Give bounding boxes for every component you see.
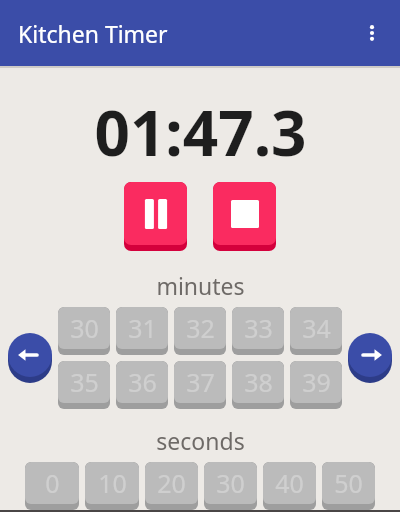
button[interactable]: Next (348, 333, 392, 383)
button[interactable]: 35 (58, 361, 110, 409)
staticText: 34 (302, 311, 331, 345)
button[interactable]: Pause (124, 182, 187, 251)
staticText: 30 (216, 466, 245, 500)
button[interactable]: 50 (322, 462, 375, 510)
staticText: 38 (244, 365, 273, 399)
button[interactable]: Stop (213, 182, 276, 251)
staticText: 10 (98, 466, 127, 500)
staticText: Kitchen Timer (18, 18, 168, 49)
staticText: 36 (128, 365, 157, 399)
button[interactable]: More options (352, 13, 392, 53)
staticText: 33 (244, 311, 273, 345)
staticText: 32 (186, 311, 215, 345)
staticText: 0 (45, 466, 60, 500)
staticText: 39 (302, 365, 331, 399)
button[interactable]: Previous (8, 333, 52, 383)
button[interactable]: 33 (232, 307, 284, 355)
staticText: 35 (70, 365, 99, 399)
button[interactable]: 40 (263, 462, 316, 510)
staticText: 20 (157, 466, 186, 500)
staticText: minutes (156, 270, 245, 301)
button[interactable]: 38 (232, 361, 284, 409)
staticText: 01:47.3 (94, 90, 307, 174)
staticText: 40 (275, 466, 304, 500)
staticText: 30 (70, 311, 99, 345)
button[interactable]: 32 (174, 307, 226, 355)
staticText: seconds (156, 425, 245, 456)
staticText: 31 (128, 311, 157, 345)
button[interactable]: 0 (25, 462, 79, 510)
button[interactable]: 37 (174, 361, 226, 409)
button[interactable]: 30 (58, 307, 110, 355)
button[interactable]: 31 (116, 307, 168, 355)
button[interactable]: 30 (204, 462, 257, 510)
staticText: 37 (186, 365, 215, 399)
button[interactable]: 10 (85, 462, 139, 510)
staticText: 50 (334, 466, 363, 500)
button[interactable]: 36 (116, 361, 168, 409)
button[interactable]: 20 (145, 462, 198, 510)
button[interactable]: 39 (290, 361, 342, 409)
button[interactable]: 34 (290, 307, 342, 355)
